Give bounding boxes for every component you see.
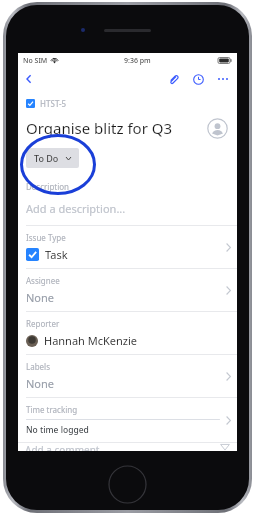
button[interactable]: Labels: [18, 354, 237, 397]
button[interactable]: Assignee: [18, 268, 237, 311]
button[interactable]: Add a comment...: [18, 443, 237, 451]
staticText: Assignee: [26, 275, 60, 286]
button[interactable]: Reporter: [18, 311, 237, 354]
staticText: None: [26, 376, 55, 391]
button[interactable]: Assign issue: [205, 116, 229, 140]
button[interactable]: HTST-5: [26, 98, 67, 109]
staticText: Time tracking: [26, 404, 78, 415]
button[interactable]: To Do: [26, 148, 79, 168]
button[interactable]: Attach: [163, 69, 183, 89]
staticText: No SIM: [23, 56, 48, 66]
button[interactable]: Issue Type: [18, 225, 237, 268]
staticText: Task: [45, 247, 68, 262]
staticText: 9:36 pm: [124, 56, 151, 66]
staticText: No time logged: [26, 424, 89, 436]
staticText: To Do: [34, 152, 59, 164]
staticText: Reporter: [26, 318, 60, 329]
button[interactable]: Back: [18, 68, 40, 90]
button[interactable]: History: [188, 69, 208, 89]
staticText: Description: [26, 181, 70, 192]
button[interactable]: Description: [18, 172, 237, 225]
staticText: Issue Type: [26, 232, 66, 243]
button[interactable]: Time tracking: [18, 397, 237, 442]
staticText: Add a description...: [26, 201, 126, 216]
staticText: Labels: [26, 361, 51, 372]
staticText: Organise blitz for Q3: [26, 118, 205, 138]
staticText: HTST-5: [40, 98, 67, 109]
staticText: Hannah McKenzie: [44, 333, 138, 348]
button[interactable]: More options: [213, 69, 233, 89]
staticText: Add a comment...: [25, 443, 220, 451]
staticText: None: [26, 290, 55, 305]
